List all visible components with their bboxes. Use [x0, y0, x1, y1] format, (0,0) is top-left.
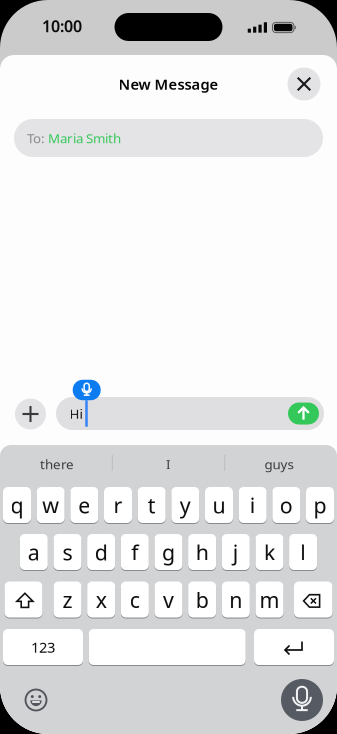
staticText: t	[148, 491, 156, 519]
button[interactable]: f	[121, 534, 149, 570]
button[interactable]: j	[222, 534, 250, 570]
staticText: u	[212, 491, 225, 519]
button[interactable]: d	[87, 534, 115, 570]
button[interactable]	[287, 67, 320, 100]
button[interactable]: 123	[3, 629, 83, 665]
button[interactable]	[294, 581, 332, 617]
staticText: guys	[264, 455, 293, 473]
button[interactable]	[4, 581, 42, 617]
staticText: r	[113, 491, 122, 519]
button[interactable]: l	[289, 534, 317, 570]
button[interactable]: z	[53, 581, 81, 617]
button[interactable]: h	[188, 534, 216, 570]
staticText: 10:00	[42, 15, 82, 37]
staticText: v	[163, 585, 174, 614]
button[interactable]	[288, 402, 319, 424]
staticText: s	[62, 538, 72, 566]
staticText: e	[78, 491, 90, 519]
staticText: b	[196, 585, 209, 614]
button[interactable]: m	[255, 581, 283, 617]
button[interactable]: g	[154, 534, 182, 570]
button[interactable]: To:	[14, 119, 323, 157]
button[interactable]: t	[138, 487, 166, 523]
staticText: g	[162, 538, 175, 566]
button[interactable]: n	[222, 581, 250, 617]
button[interactable]: I	[118, 449, 218, 479]
button[interactable]	[254, 629, 334, 665]
button[interactable]: c	[121, 581, 149, 617]
button[interactable]	[89, 629, 246, 665]
staticText: z	[62, 585, 72, 614]
button[interactable]: there	[7, 449, 107, 479]
staticText: 123	[31, 637, 55, 657]
staticText: x	[96, 585, 107, 614]
button[interactable]: y	[171, 487, 199, 523]
staticText: n	[229, 585, 242, 614]
staticText: i	[250, 491, 256, 519]
button[interactable]: u	[205, 487, 233, 523]
button[interactable]	[24, 688, 48, 712]
button[interactable]: p	[306, 487, 334, 523]
staticText: I	[166, 455, 171, 473]
staticText: Maria Smith	[48, 129, 121, 147]
button[interactable]: r	[104, 487, 132, 523]
button[interactable]	[73, 380, 101, 400]
staticText: there	[40, 455, 74, 473]
staticText: q	[10, 491, 23, 519]
button[interactable]: b	[188, 581, 216, 617]
button[interactable]: x	[87, 581, 115, 617]
staticText: h	[196, 538, 209, 566]
staticText: New Message	[118, 74, 218, 94]
button[interactable]: v	[154, 581, 182, 617]
staticText: j	[233, 538, 239, 566]
button[interactable]: s	[53, 534, 81, 570]
staticText: c	[130, 585, 140, 614]
button[interactable]	[281, 679, 323, 721]
button[interactable]: o	[272, 487, 300, 523]
button[interactable]: k	[255, 534, 283, 570]
staticText: k	[264, 538, 275, 566]
button[interactable]: i	[239, 487, 267, 523]
staticText: d	[95, 538, 108, 566]
button[interactable]: a	[20, 534, 48, 570]
staticText: m	[259, 585, 279, 614]
staticText: To:	[27, 129, 45, 147]
button[interactable]: guys	[229, 449, 329, 479]
staticText: l	[300, 538, 306, 566]
button[interactable]	[15, 398, 46, 429]
staticText: o	[280, 491, 293, 519]
button[interactable]: e	[70, 487, 98, 523]
staticText: Hi	[69, 405, 82, 422]
button[interactable]: q	[3, 487, 31, 523]
button[interactable]: w	[37, 487, 65, 523]
staticText: a	[28, 538, 40, 566]
staticText: f	[131, 538, 138, 566]
staticText: y	[180, 491, 191, 519]
staticText: p	[313, 491, 326, 519]
staticText: w	[42, 491, 59, 519]
